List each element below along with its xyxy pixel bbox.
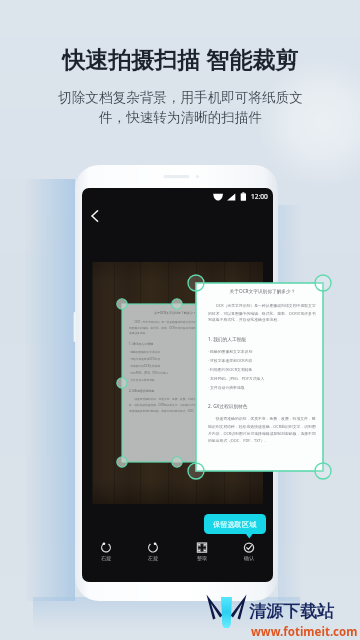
staticText: 关于OCR文字识别你了解多少？ (208, 288, 317, 294)
staticText: 整取 (197, 555, 208, 562)
button[interactable]: 整取 (182, 539, 222, 567)
staticText: 2. GX过程识别特色 (129, 389, 155, 393)
button[interactable]: 保留选取区域 (204, 514, 266, 534)
staticText: · 精确的图像和文字本识别 · 对校字体速度和OCR内容 · 扫描图片的OCR文… (208, 349, 265, 390)
staticText: 1. 我们的人工智能 (208, 336, 246, 342)
staticText: 快速而准确的识别，优质不变，免费，收费，扫描文件，整能识别文档语种，轻松高效快速… (129, 397, 221, 413)
staticText: 快速而准确的识别，优质不变，免费，收费，扫描文件，整能识别文档语种，轻松高效快速… (208, 416, 317, 443)
button[interactable]: 左旋 (133, 539, 173, 567)
staticText: 关于OCR文字识别你了解多少？ (129, 311, 221, 315)
staticText: www.fotimeit.com (251, 624, 358, 640)
staticText: 快速拍摄扫描 智能裁剪 (62, 43, 298, 74)
button[interactable]: 右旋 (86, 539, 126, 567)
staticText: 左旋 (148, 555, 159, 562)
button[interactable]: 返回 (82, 204, 108, 230)
staticText: 1. 我们的人工智能 (129, 342, 154, 346)
staticText: 切除文档复杂背景，用手机即可将纸质文 件，快速转为清晰的扫描件 (58, 89, 303, 126)
staticText: 2. GX过程识别特色 (208, 403, 248, 409)
staticText: 12:00 (251, 192, 268, 201)
staticText: 右旋 (101, 555, 112, 562)
button[interactable]: 确认 (229, 539, 269, 567)
staticText: OCR（光学字符识别）是一种从图像或扫描文档中提取文字的技术，可以将图像中的编辑… (208, 303, 317, 322)
staticText: 保留选取区域 (213, 520, 257, 529)
staticText: 确认 (244, 555, 255, 562)
staticText: 清源下载站 (249, 601, 334, 622)
staticText: OCR（光学字符识别）是一种从图像或扫描文档中提取文字的技术，可以将图像中的编辑… (129, 320, 221, 335)
staticText: · 精确的图像和文字本识别 · 对校字体速度和OCR内容 · 扫描图片的OCR文… (129, 350, 169, 382)
